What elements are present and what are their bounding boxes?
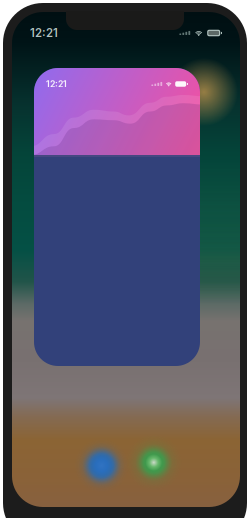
staticText: 12:21 [30, 26, 58, 40]
staticText: 12:21 [46, 79, 67, 89]
